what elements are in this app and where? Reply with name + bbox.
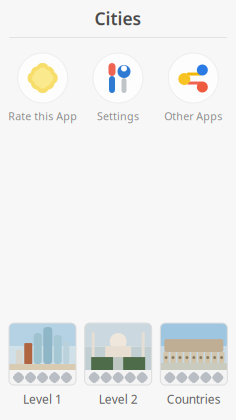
staticText: Countries <box>167 391 221 407</box>
button[interactable]: Level 2 <box>85 323 151 407</box>
button[interactable]: Level 1 <box>9 323 76 407</box>
button[interactable]: Countries <box>160 323 227 407</box>
staticText: Level 1 <box>23 391 62 407</box>
button[interactable]: Other Apps <box>156 53 231 123</box>
staticText: Level 2 <box>99 391 138 407</box>
button[interactable]: Settings <box>80 53 156 123</box>
button[interactable]: Rate this App <box>5 53 80 123</box>
staticText: Other Apps <box>164 109 222 123</box>
staticText: Rate this App <box>8 109 77 123</box>
staticText: Settings <box>97 109 139 123</box>
staticText: Cities <box>94 7 141 30</box>
